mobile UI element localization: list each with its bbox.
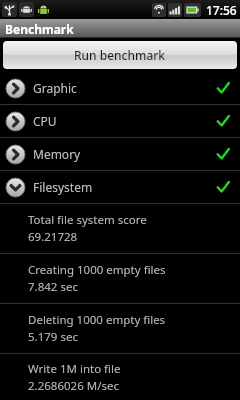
staticText: Filesystem bbox=[33, 179, 216, 195]
staticText: Deleting 1000 empty files bbox=[28, 312, 166, 328]
staticText: 5.179 sec bbox=[28, 329, 78, 345]
staticText: Creating 1000 empty files bbox=[28, 262, 166, 278]
button[interactable]: Expand bbox=[0, 138, 240, 170]
staticText: Memory bbox=[33, 146, 216, 162]
button[interactable]: Creating 1000 empty files bbox=[0, 254, 240, 303]
staticText: Total file system score bbox=[28, 212, 147, 228]
staticText: Graphic bbox=[33, 80, 216, 96]
button[interactable]: Write 1M into file bbox=[0, 354, 240, 400]
button[interactable]: Expand bbox=[0, 105, 240, 137]
other: Expand bbox=[6, 79, 25, 98]
staticText: CPU bbox=[33, 113, 216, 129]
button[interactable]: Run benchmark bbox=[3, 41, 237, 69]
staticText: 17:56 bbox=[206, 2, 237, 18]
button[interactable]: Expand bbox=[0, 72, 240, 104]
button[interactable]: Deleting 1000 empty files bbox=[0, 304, 240, 353]
staticText: 7.842 sec bbox=[28, 279, 78, 295]
staticText: Benchmark bbox=[5, 21, 74, 37]
staticText: 69.21728 bbox=[28, 229, 78, 245]
other: Expand bbox=[6, 145, 25, 164]
staticText: Run benchmark bbox=[74, 47, 166, 63]
button[interactable]: Collapse bbox=[0, 171, 240, 203]
other: Expand bbox=[6, 112, 25, 131]
staticText: Write 1M into file bbox=[28, 361, 121, 377]
other: Collapse bbox=[6, 178, 25, 197]
button[interactable]: Total file system score bbox=[0, 204, 240, 253]
staticText: 2.2686026 M/sec bbox=[28, 378, 119, 394]
